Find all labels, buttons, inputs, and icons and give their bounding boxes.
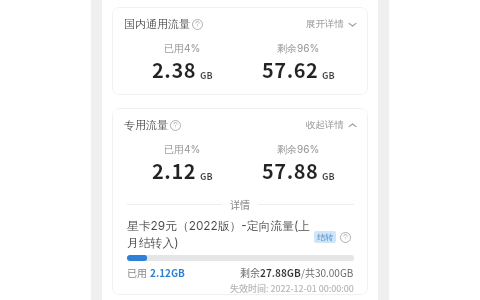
button[interactable]: 展开详情 xyxy=(306,18,357,30)
staticText: 展开详情 xyxy=(306,18,344,30)
staticText: 剩余96% xyxy=(277,42,320,55)
staticText: 57.62 xyxy=(262,55,319,84)
staticText: 国内通用流量 xyxy=(124,17,190,31)
staticText: 2.12GB xyxy=(150,265,185,279)
staticText: /共30.00GB xyxy=(301,265,354,279)
staticText: 已用4% xyxy=(164,143,201,156)
staticText: 57.88 xyxy=(262,156,319,185)
staticText: 剩余96% xyxy=(277,143,320,156)
staticText: 2.38 xyxy=(152,55,197,84)
staticText: GB xyxy=(322,69,335,82)
button[interactable]: 收起详情 xyxy=(306,119,357,131)
staticText: 27.88GB xyxy=(260,265,301,279)
staticText: 详情 xyxy=(230,197,250,211)
staticText: 2.12 xyxy=(152,156,197,185)
staticText: 结转 xyxy=(317,232,333,242)
staticText: GB xyxy=(200,69,213,82)
staticText: 剩余 xyxy=(240,265,260,279)
staticText: 收起详情 xyxy=(306,119,344,131)
staticText: 已用 xyxy=(127,265,150,279)
staticText: GB xyxy=(322,170,335,183)
staticText: 星卡29元（2022版）-定向流量(上月结转入) xyxy=(127,219,313,250)
staticText: 专用流量 xyxy=(124,118,168,132)
staticText: 已用4% xyxy=(164,42,201,55)
staticText: GB xyxy=(200,170,213,183)
staticText: 失效时间: 2022-12-01 00:00:00 xyxy=(230,282,354,295)
